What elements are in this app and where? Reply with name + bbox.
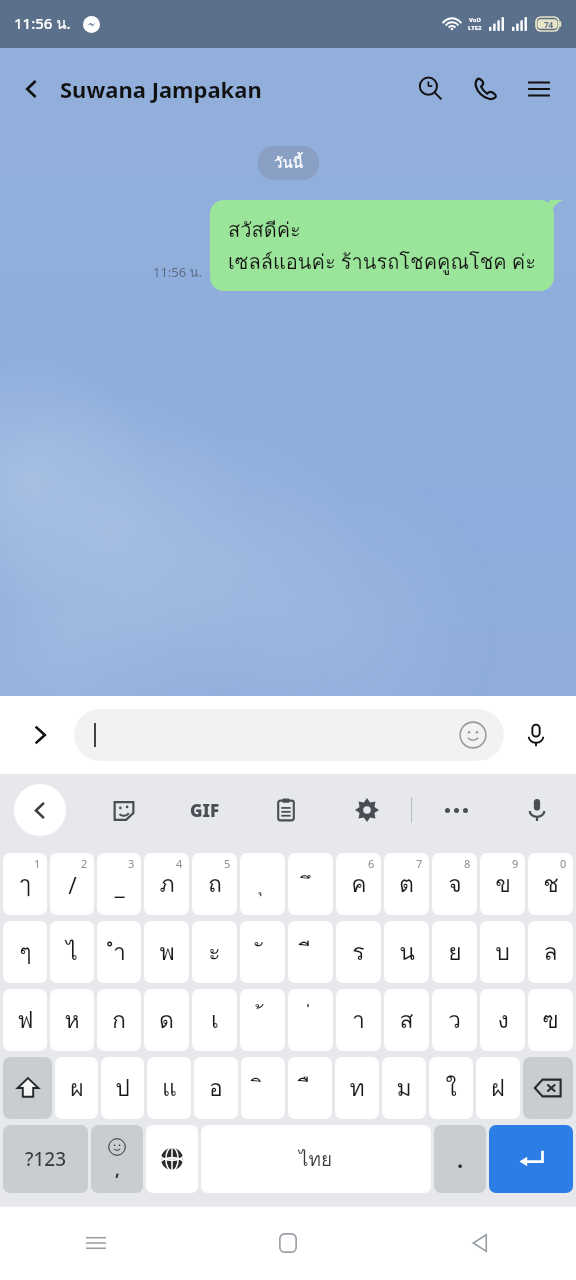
staticText: ไทย: [299, 1144, 333, 1174]
button[interactable]: Collapse toolbar: [14, 784, 66, 836]
staticText: ะ: [208, 934, 221, 971]
button[interactable]: ภ: [144, 853, 189, 915]
button[interactable]: ใ: [429, 1057, 473, 1119]
button[interactable]: ำ: [97, 921, 141, 983]
button[interactable]: ท: [335, 1057, 379, 1119]
staticText: ม: [396, 1070, 412, 1107]
button[interactable]: ุ: [240, 853, 285, 915]
button[interactable]: Shift: [3, 1057, 52, 1119]
button[interactable]: ฟ: [3, 989, 47, 1051]
staticText: สวัสดีค่ะ เซลล์แอนค่ะ ร้านรถโชคคูณโชค ค่…: [228, 214, 536, 277]
button[interactable]: Back: [384, 1206, 576, 1280]
staticText: ?123: [25, 1146, 67, 1172]
button[interactable]: ม: [382, 1057, 426, 1119]
staticText: ๅ: [19, 866, 31, 903]
staticText: ร: [352, 934, 365, 971]
button[interactable]: แ: [147, 1057, 191, 1119]
staticText: 9: [512, 856, 519, 871]
staticText: 5: [224, 856, 231, 871]
button[interactable]: ฝ: [476, 1057, 520, 1119]
button[interactable]: ื: [288, 1057, 332, 1119]
staticText: 74: [544, 19, 554, 30]
button[interactable]: /: [50, 853, 94, 915]
button[interactable]: ต: [384, 853, 429, 915]
button[interactable]: ิ: [241, 1057, 285, 1119]
button[interactable]: Emoji: [74, 709, 504, 761]
staticText: ข: [495, 866, 511, 903]
staticText: _: [114, 869, 125, 900]
button[interactable]: ?123: [3, 1125, 88, 1193]
button[interactable]: ร: [336, 921, 381, 983]
button[interactable]: ก: [97, 989, 141, 1051]
button[interactable]: ๅ: [3, 853, 47, 915]
button[interactable]: จ: [432, 853, 477, 915]
button[interactable]: น: [384, 921, 429, 983]
button[interactable]: ถ: [192, 853, 237, 915]
button[interactable]: GIF: [182, 787, 228, 833]
button[interactable]: Emoji and comma: [91, 1125, 143, 1193]
button[interactable]: ย: [432, 921, 477, 983]
button[interactable]: More: [433, 787, 479, 833]
button[interactable]: อ: [194, 1057, 238, 1119]
button[interactable]: ะ: [192, 921, 237, 983]
staticText: 1: [34, 856, 41, 871]
button[interactable]: Home: [192, 1206, 384, 1280]
button[interactable]: Clipboard: [263, 787, 309, 833]
button[interactable]: ง: [480, 989, 525, 1051]
button[interactable]: ไทย: [201, 1125, 431, 1193]
button[interactable]: Voice message: [514, 713, 558, 757]
button[interactable]: พ: [144, 921, 189, 983]
button[interactable]: สวัสดีค่ะ เซลล์แอนค่ะ ร้านรถโชคคูณโชค ค่…: [210, 200, 554, 291]
button[interactable]: Menu: [516, 66, 562, 112]
button[interactable]: ข: [480, 853, 525, 915]
button[interactable]: Enter: [489, 1125, 573, 1193]
button[interactable]: Emoji: [458, 720, 488, 750]
button[interactable]: Voice input: [514, 787, 560, 833]
button[interactable]: ค: [336, 853, 381, 915]
button[interactable]: Backspace: [523, 1057, 573, 1119]
staticText: ย: [448, 934, 462, 971]
button[interactable]: Call: [462, 66, 508, 112]
button[interactable]: Change language: [146, 1125, 198, 1193]
button[interactable]: ว: [432, 989, 477, 1051]
button[interactable]: ่: [288, 989, 333, 1051]
button[interactable]: ี: [288, 921, 333, 983]
button[interactable]: เ: [192, 989, 237, 1051]
staticText: ใ: [445, 1070, 457, 1107]
staticText: ฝ: [491, 1070, 505, 1107]
staticText: ำ: [113, 934, 126, 971]
button[interactable]: ้: [240, 989, 285, 1051]
button[interactable]: ล: [528, 921, 573, 983]
button[interactable]: Stickers: [101, 787, 147, 833]
button[interactable]: Back: [10, 67, 54, 111]
button[interactable]: ด: [144, 989, 189, 1051]
button[interactable]: ช: [528, 853, 573, 915]
staticText: ภ: [159, 866, 175, 903]
button[interactable]: Settings: [344, 787, 390, 833]
staticText: ฃ: [542, 1002, 559, 1039]
button[interactable]: ั: [240, 921, 285, 983]
button[interactable]: า: [336, 989, 381, 1051]
staticText: 7: [416, 856, 423, 871]
button[interactable]: ึ: [288, 853, 333, 915]
staticText: 11:56 น.: [153, 262, 202, 283]
button[interactable]: ส: [384, 989, 429, 1051]
staticText: เ: [211, 1002, 219, 1039]
button[interactable]: More options: [18, 713, 62, 757]
staticText: /: [68, 869, 77, 900]
button[interactable]: Recent apps: [0, 1206, 192, 1280]
button[interactable]: ผ: [55, 1057, 98, 1119]
button[interactable]: บ: [480, 921, 525, 983]
button[interactable]: ๆ: [3, 921, 47, 983]
button[interactable]: ฃ: [528, 989, 573, 1051]
staticText: ป: [115, 1070, 130, 1107]
button[interactable]: _: [97, 853, 141, 915]
button[interactable]: Search: [408, 66, 454, 112]
staticText: ด: [159, 1002, 174, 1039]
button[interactable]: .: [434, 1125, 486, 1193]
button[interactable]: ป: [101, 1057, 144, 1119]
staticText: พ: [159, 934, 175, 971]
staticText: ไ: [66, 934, 78, 971]
button[interactable]: ไ: [50, 921, 94, 983]
button[interactable]: ห: [50, 989, 94, 1051]
